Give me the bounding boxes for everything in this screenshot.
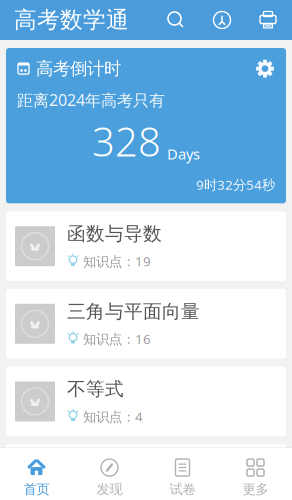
- staticText: 更多: [242, 481, 268, 497]
- staticText: 不等式: [67, 378, 124, 400]
- staticText: 9时32分54秒: [196, 176, 275, 193]
- staticText: 知识点：19: [83, 252, 151, 270]
- button[interactable]: 高考倒计时: [6, 48, 286, 203]
- button[interactable]: 不等式: [6, 367, 286, 436]
- button[interactable]: 数列: [6, 444, 286, 500]
- staticText: 发现: [96, 481, 122, 497]
- staticText: 高考数学通: [14, 6, 129, 34]
- staticText: 试卷: [169, 481, 195, 497]
- button[interactable]: 首页: [0, 452, 73, 500]
- staticText: 知识点：4: [83, 408, 143, 425]
- staticText: 函数与导数: [67, 222, 162, 245]
- button[interactable]: Print: [258, 10, 278, 30]
- staticText: 知识点：10: [83, 485, 151, 500]
- staticText: 首页: [23, 481, 49, 497]
- button[interactable]: 更多: [219, 452, 292, 500]
- staticText: 知识点：16: [83, 330, 151, 348]
- button[interactable]: 函数与导数: [6, 211, 286, 281]
- button[interactable]: 发现: [73, 452, 146, 500]
- button[interactable]: Downloads: [212, 10, 232, 30]
- button[interactable]: 试卷: [146, 452, 219, 500]
- staticText: 数列: [67, 455, 105, 478]
- staticText: 距离2024年高考只有: [17, 89, 165, 110]
- staticText: Days: [167, 144, 200, 164]
- staticText: 三角与平面向量: [67, 300, 200, 323]
- staticText: 高考倒计时: [36, 58, 121, 79]
- button[interactable]: Search: [166, 10, 186, 30]
- staticText: 328: [92, 114, 161, 168]
- button[interactable]: 三角与平面向量: [6, 289, 286, 359]
